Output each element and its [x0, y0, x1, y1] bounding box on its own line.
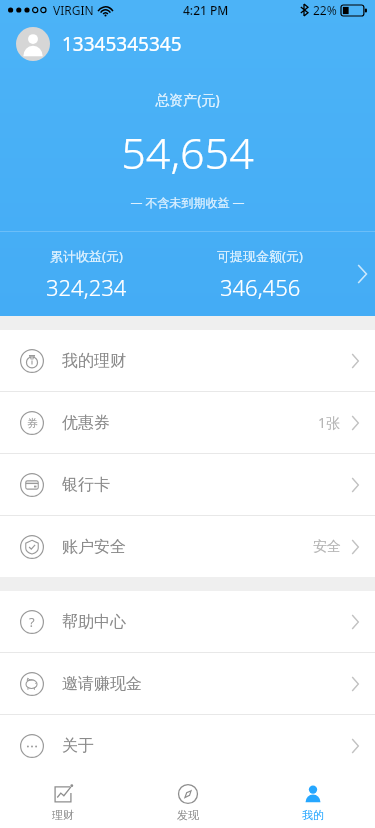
- staticText: 银行卡: [62, 475, 110, 495]
- staticText: 券: [27, 416, 38, 430]
- staticText: 4:21 PM: [183, 2, 229, 18]
- button[interactable]: 理财: [0, 776, 125, 828]
- button[interactable]: 累计收益(元): [0, 232, 375, 316]
- button[interactable]: 银行卡: [0, 454, 375, 515]
- staticText: 账户安全: [62, 537, 126, 557]
- staticText: 帮助中心: [62, 612, 126, 632]
- staticText: 54,654: [0, 123, 375, 182]
- staticText: ?: [29, 613, 35, 631]
- staticText: 关于: [62, 736, 94, 756]
- button[interactable]: 发现: [125, 776, 250, 828]
- staticText: 理财: [52, 808, 74, 822]
- staticText: 安全: [313, 538, 341, 556]
- staticText: 总资产(元): [0, 90, 375, 109]
- staticText: 324,234: [46, 272, 127, 302]
- staticText: 我的理财: [62, 351, 126, 371]
- button[interactable]: 券: [0, 392, 375, 453]
- staticText: 优惠券: [62, 413, 110, 433]
- staticText: 发现: [177, 808, 199, 822]
- staticText: 可提现金额(元): [217, 247, 303, 265]
- staticText: 13345345345: [62, 31, 182, 57]
- staticText: — 不含未到期收益 —: [0, 194, 375, 210]
- button[interactable]: 邀请赚现金: [0, 653, 375, 714]
- staticText: 1张: [318, 413, 341, 432]
- staticText: 22%: [313, 2, 337, 18]
- staticText: 累计收益(元): [50, 247, 123, 265]
- staticText: 346,456: [220, 272, 301, 302]
- button[interactable]: 我的: [250, 776, 375, 828]
- button[interactable]: 关于: [0, 715, 375, 776]
- button[interactable]: 账户安全: [0, 516, 375, 577]
- staticText: 邀请赚现金: [62, 674, 142, 694]
- button[interactable]: 我的理财: [0, 330, 375, 391]
- staticText: 我的: [302, 808, 324, 822]
- button[interactable]: ?: [0, 591, 375, 652]
- staticText: VIRGIN: [53, 2, 94, 18]
